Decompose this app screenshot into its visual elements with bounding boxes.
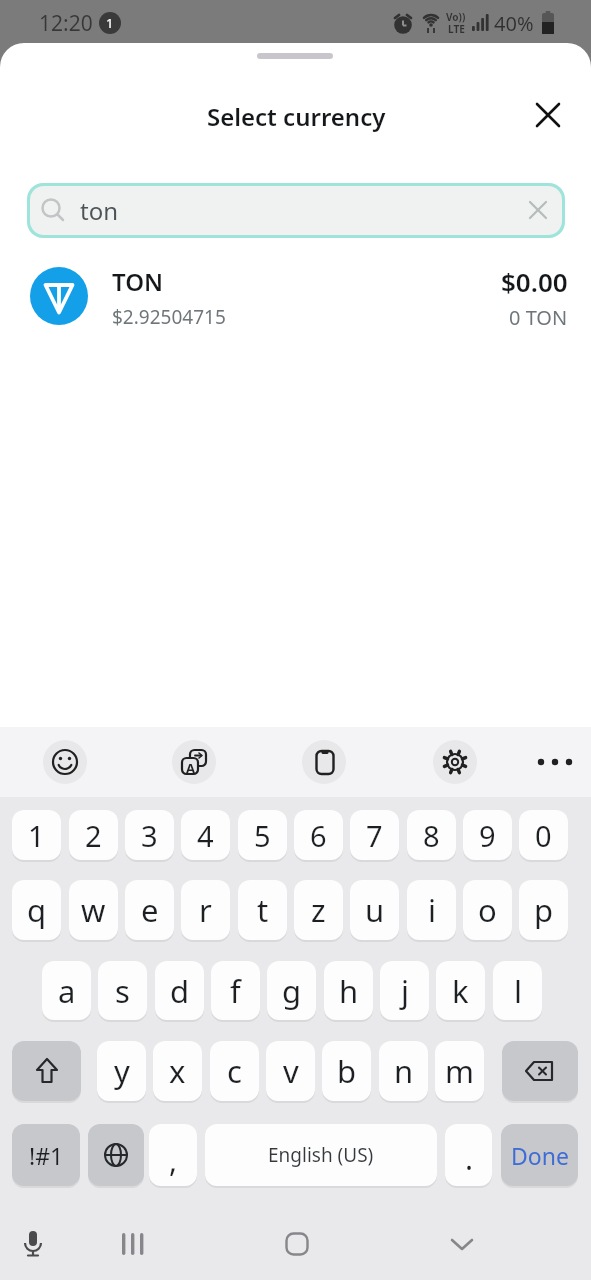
- button[interactable]: [442, 1224, 482, 1264]
- staticText: d: [170, 970, 190, 1012]
- button[interactable]: [13, 1224, 53, 1264]
- staticText: j: [401, 970, 409, 1012]
- button[interactable]: [0, 255, 591, 339]
- button[interactable]: g: [267, 961, 316, 1020]
- button[interactable]: l: [493, 961, 542, 1020]
- button[interactable]: c: [210, 1041, 259, 1101]
- button[interactable]: 5: [238, 810, 287, 860]
- staticText: 9: [479, 816, 496, 855]
- staticText: TON: [112, 265, 164, 298]
- button[interactable]: !#1: [12, 1124, 80, 1186]
- button[interactable]: 3: [125, 810, 174, 860]
- button[interactable]: 4: [181, 810, 230, 860]
- button[interactable]: [502, 1041, 578, 1101]
- button[interactable]: [113, 1224, 153, 1264]
- button[interactable]: [445, 1124, 492, 1186]
- button[interactable]: f: [211, 961, 260, 1020]
- button[interactable]: w: [69, 880, 118, 940]
- button[interactable]: [43, 740, 87, 784]
- staticText: z: [311, 889, 326, 931]
- staticText: Done: [511, 1140, 569, 1171]
- staticText: t: [257, 889, 269, 931]
- staticText: o: [478, 889, 497, 931]
- staticText: 0 TON: [509, 304, 568, 331]
- button[interactable]: i: [407, 880, 456, 940]
- staticText: a: [58, 970, 76, 1012]
- staticText: b: [337, 1050, 357, 1092]
- staticText: 8: [423, 816, 440, 855]
- button[interactable]: e: [125, 880, 174, 940]
- staticText: 1: [28, 816, 45, 855]
- staticText: p: [534, 889, 554, 931]
- staticText: 1: [106, 14, 114, 32]
- button[interactable]: y: [97, 1041, 146, 1101]
- button[interactable]: 6: [294, 810, 343, 860]
- staticText: 3: [141, 816, 158, 855]
- button[interactable]: o: [463, 880, 512, 940]
- staticText: .: [465, 1138, 474, 1178]
- button[interactable]: n: [379, 1041, 428, 1101]
- staticText: $2.92504715: [112, 304, 226, 330]
- staticText: r: [199, 889, 212, 931]
- button[interactable]: 2: [69, 810, 118, 860]
- staticText: 40%: [494, 10, 534, 37]
- staticText: x: [169, 1050, 186, 1092]
- button[interactable]: p: [519, 880, 568, 940]
- button[interactable]: English (US): [205, 1124, 437, 1186]
- staticText: 12:20: [39, 9, 93, 38]
- button[interactable]: [535, 756, 575, 768]
- staticText: ton: [80, 194, 119, 227]
- button[interactable]: a: [42, 961, 91, 1020]
- button[interactable]: Done: [501, 1124, 578, 1186]
- button[interactable]: s: [98, 961, 147, 1020]
- button[interactable]: v: [266, 1041, 315, 1101]
- staticText: 2: [85, 816, 102, 855]
- button[interactable]: [149, 1124, 197, 1186]
- button[interactable]: j: [380, 961, 429, 1020]
- button[interactable]: q: [12, 880, 61, 940]
- staticText: c: [227, 1050, 242, 1092]
- staticText: 0: [535, 816, 552, 855]
- staticText: f: [230, 970, 241, 1012]
- staticText: y: [114, 1050, 130, 1092]
- button[interactable]: [88, 1124, 144, 1186]
- staticText: m: [445, 1050, 474, 1092]
- staticText: English (US): [268, 1142, 374, 1168]
- button[interactable]: u: [350, 880, 399, 940]
- button[interactable]: m: [435, 1041, 484, 1101]
- staticText: 6: [310, 816, 327, 855]
- button[interactable]: [172, 740, 216, 784]
- staticText: 7: [366, 816, 383, 855]
- button[interactable]: k: [436, 961, 485, 1020]
- staticText: i: [428, 889, 436, 931]
- staticText: u: [365, 889, 385, 931]
- button[interactable]: r: [181, 880, 230, 940]
- staticText: n: [394, 1050, 414, 1092]
- staticText: A: [186, 759, 195, 775]
- button[interactable]: [277, 1224, 317, 1264]
- button[interactable]: z: [294, 880, 343, 940]
- staticText: k: [452, 970, 469, 1012]
- button[interactable]: x: [153, 1041, 202, 1101]
- button[interactable]: [433, 740, 477, 784]
- button[interactable]: [27, 183, 565, 238]
- button[interactable]: 8: [407, 810, 456, 860]
- button[interactable]: t: [238, 880, 287, 940]
- button[interactable]: b: [322, 1041, 371, 1101]
- staticText: 5: [254, 816, 271, 855]
- staticText: s: [115, 970, 130, 1012]
- button[interactable]: 1: [12, 810, 61, 860]
- button[interactable]: h: [324, 961, 373, 1020]
- button[interactable]: d: [155, 961, 204, 1020]
- staticText: $0.00: [501, 264, 568, 299]
- staticText: Select currency: [207, 100, 386, 133]
- button[interactable]: [302, 740, 346, 784]
- button[interactable]: 0: [519, 810, 568, 860]
- button[interactable]: [524, 91, 572, 139]
- staticText: 4: [197, 816, 214, 855]
- button[interactable]: [12, 1041, 81, 1101]
- staticText: v: [283, 1050, 299, 1092]
- staticText: !#1: [29, 1140, 64, 1171]
- button[interactable]: 9: [463, 810, 512, 860]
- button[interactable]: 7: [350, 810, 399, 860]
